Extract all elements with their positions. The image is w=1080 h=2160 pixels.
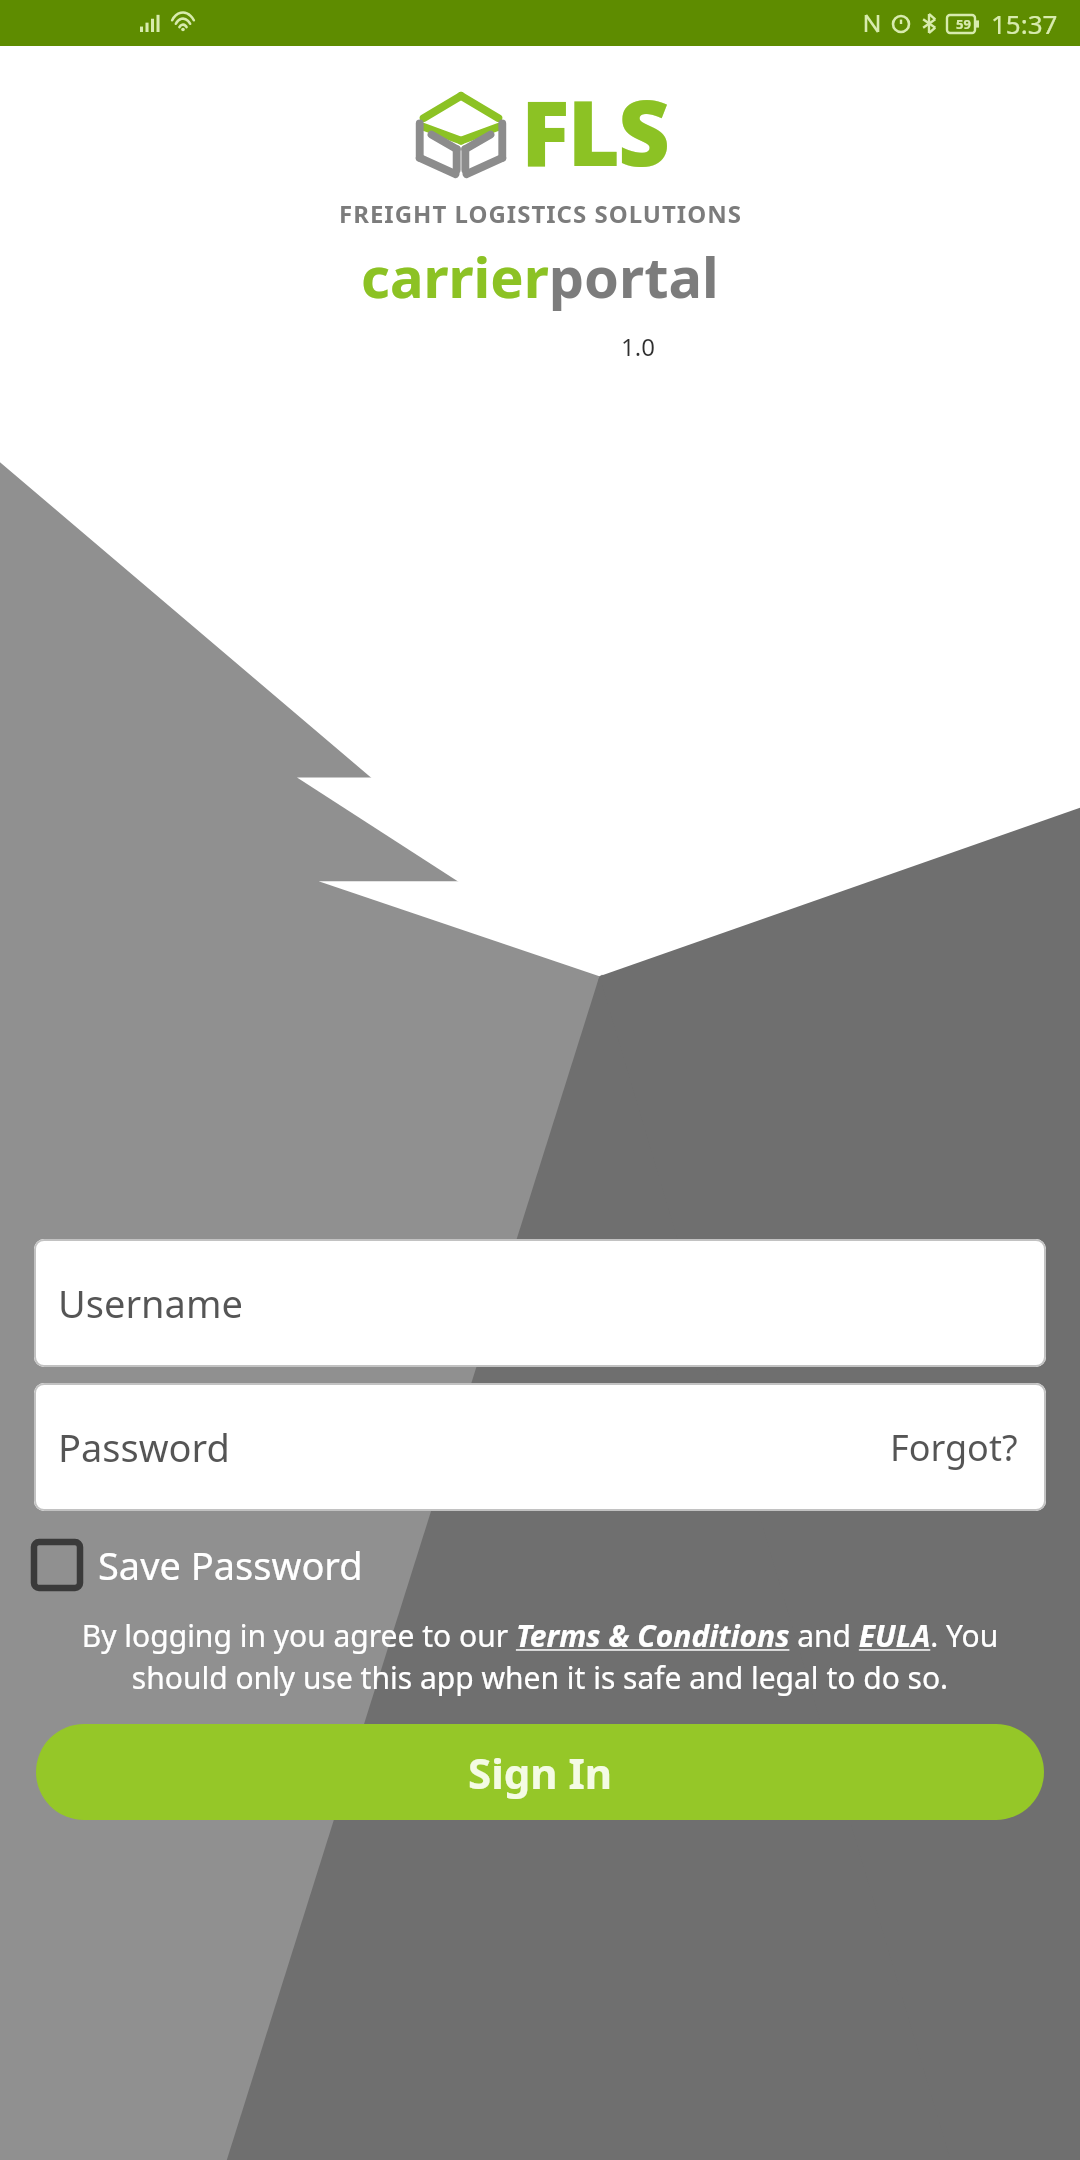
button[interactable]: Password	[34, 1383, 1046, 1511]
staticText: carrierportal	[361, 238, 719, 314]
staticText: 15:37	[991, 6, 1058, 41]
staticText: Sign In	[468, 1744, 613, 1801]
staticText: Forgot?	[890, 1423, 1018, 1472]
button[interactable]: Save Password	[34, 1533, 363, 1597]
staticText: Username	[58, 1277, 243, 1329]
button[interactable]: Username	[34, 1239, 1046, 1367]
staticText: FLS	[521, 70, 668, 193]
staticText: FREIGHT LOGISTICS SOLUTIONS	[339, 197, 742, 230]
staticText: Save Password	[98, 1539, 363, 1591]
button[interactable]: Sign In	[36, 1724, 1044, 1820]
other: FLS logo	[413, 89, 509, 175]
staticText: Password	[58, 1421, 230, 1473]
button[interactable]: Forgot?	[886, 1419, 1022, 1476]
staticText: By logging in you agree to our Terms & C…	[34, 1615, 1046, 1698]
staticText: 1.0	[621, 330, 655, 363]
staticText: 59	[956, 15, 971, 33]
